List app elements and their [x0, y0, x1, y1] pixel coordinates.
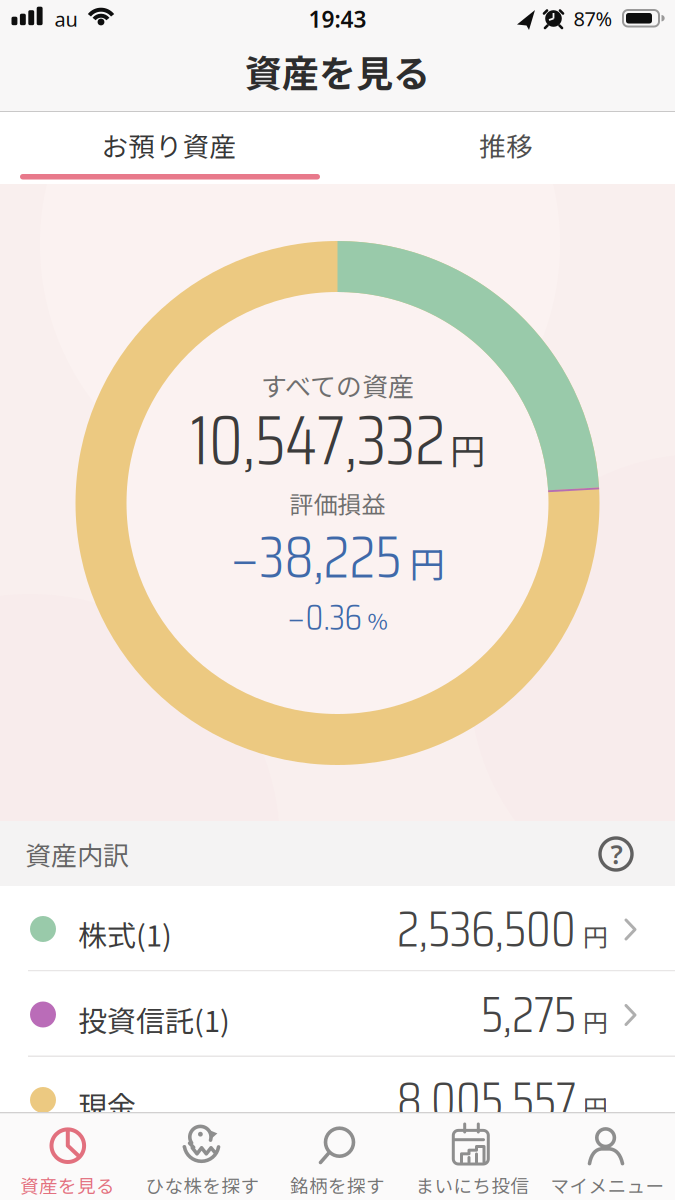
staticText: 投資信託(1) — [78, 998, 230, 1040]
button[interactable]: 資産を見る — [0, 1112, 135, 1200]
button[interactable]: ひな株を探す — [135, 1112, 270, 1200]
staticText: すべての資産 — [261, 366, 414, 404]
staticText: まいにち投信 — [415, 1172, 529, 1198]
staticText: 5,275 — [481, 975, 576, 1054]
staticText: 銘柄を探す — [290, 1172, 385, 1198]
staticText: 評価損益 — [289, 486, 385, 520]
staticText: 円 — [450, 424, 485, 474]
staticText: 資産を見る — [20, 1172, 115, 1198]
staticText: −0.36 — [287, 588, 361, 646]
staticText: % — [367, 604, 387, 636]
button[interactable]: 投資信託(1) — [0, 971, 675, 1057]
staticText: 円 — [583, 1003, 608, 1039]
staticText: au — [54, 6, 77, 32]
button[interactable]: 推移 — [337, 114, 674, 176]
button[interactable]: まいにち投信 — [405, 1112, 540, 1200]
button[interactable]: マイメニュー — [540, 1112, 675, 1200]
staticText: 株式(1) — [78, 913, 172, 955]
button[interactable]: お預り資産 — [0, 114, 337, 176]
staticText: 19:43 — [308, 4, 366, 34]
staticText: 円 — [583, 1089, 608, 1125]
button[interactable]: 現金 — [0, 1057, 675, 1142]
button[interactable]: 株式(1) — [0, 886, 675, 971]
staticText: 現金 — [78, 1084, 136, 1126]
staticText: 87% — [573, 5, 612, 32]
staticText: お預り資産 — [101, 126, 236, 164]
staticText: 円 — [583, 918, 608, 954]
staticText: 円 — [409, 537, 444, 588]
staticText: 2,536,500 — [397, 889, 576, 969]
staticText: 資産内訳 — [25, 835, 129, 873]
staticText: ひな株を探す — [145, 1172, 259, 1198]
button[interactable]: 銘柄を探す — [270, 1112, 405, 1200]
staticText: 10,547,332 — [190, 385, 445, 495]
staticText: 推移 — [479, 126, 533, 164]
button[interactable]: ヘルプ — [599, 837, 633, 871]
staticText: ? — [610, 836, 622, 872]
staticText: −38,225 — [230, 511, 401, 603]
staticText: 資産を見る — [245, 44, 430, 98]
staticText: 8,005,557 — [397, 1060, 576, 1140]
staticText: マイメニュー — [550, 1172, 664, 1198]
